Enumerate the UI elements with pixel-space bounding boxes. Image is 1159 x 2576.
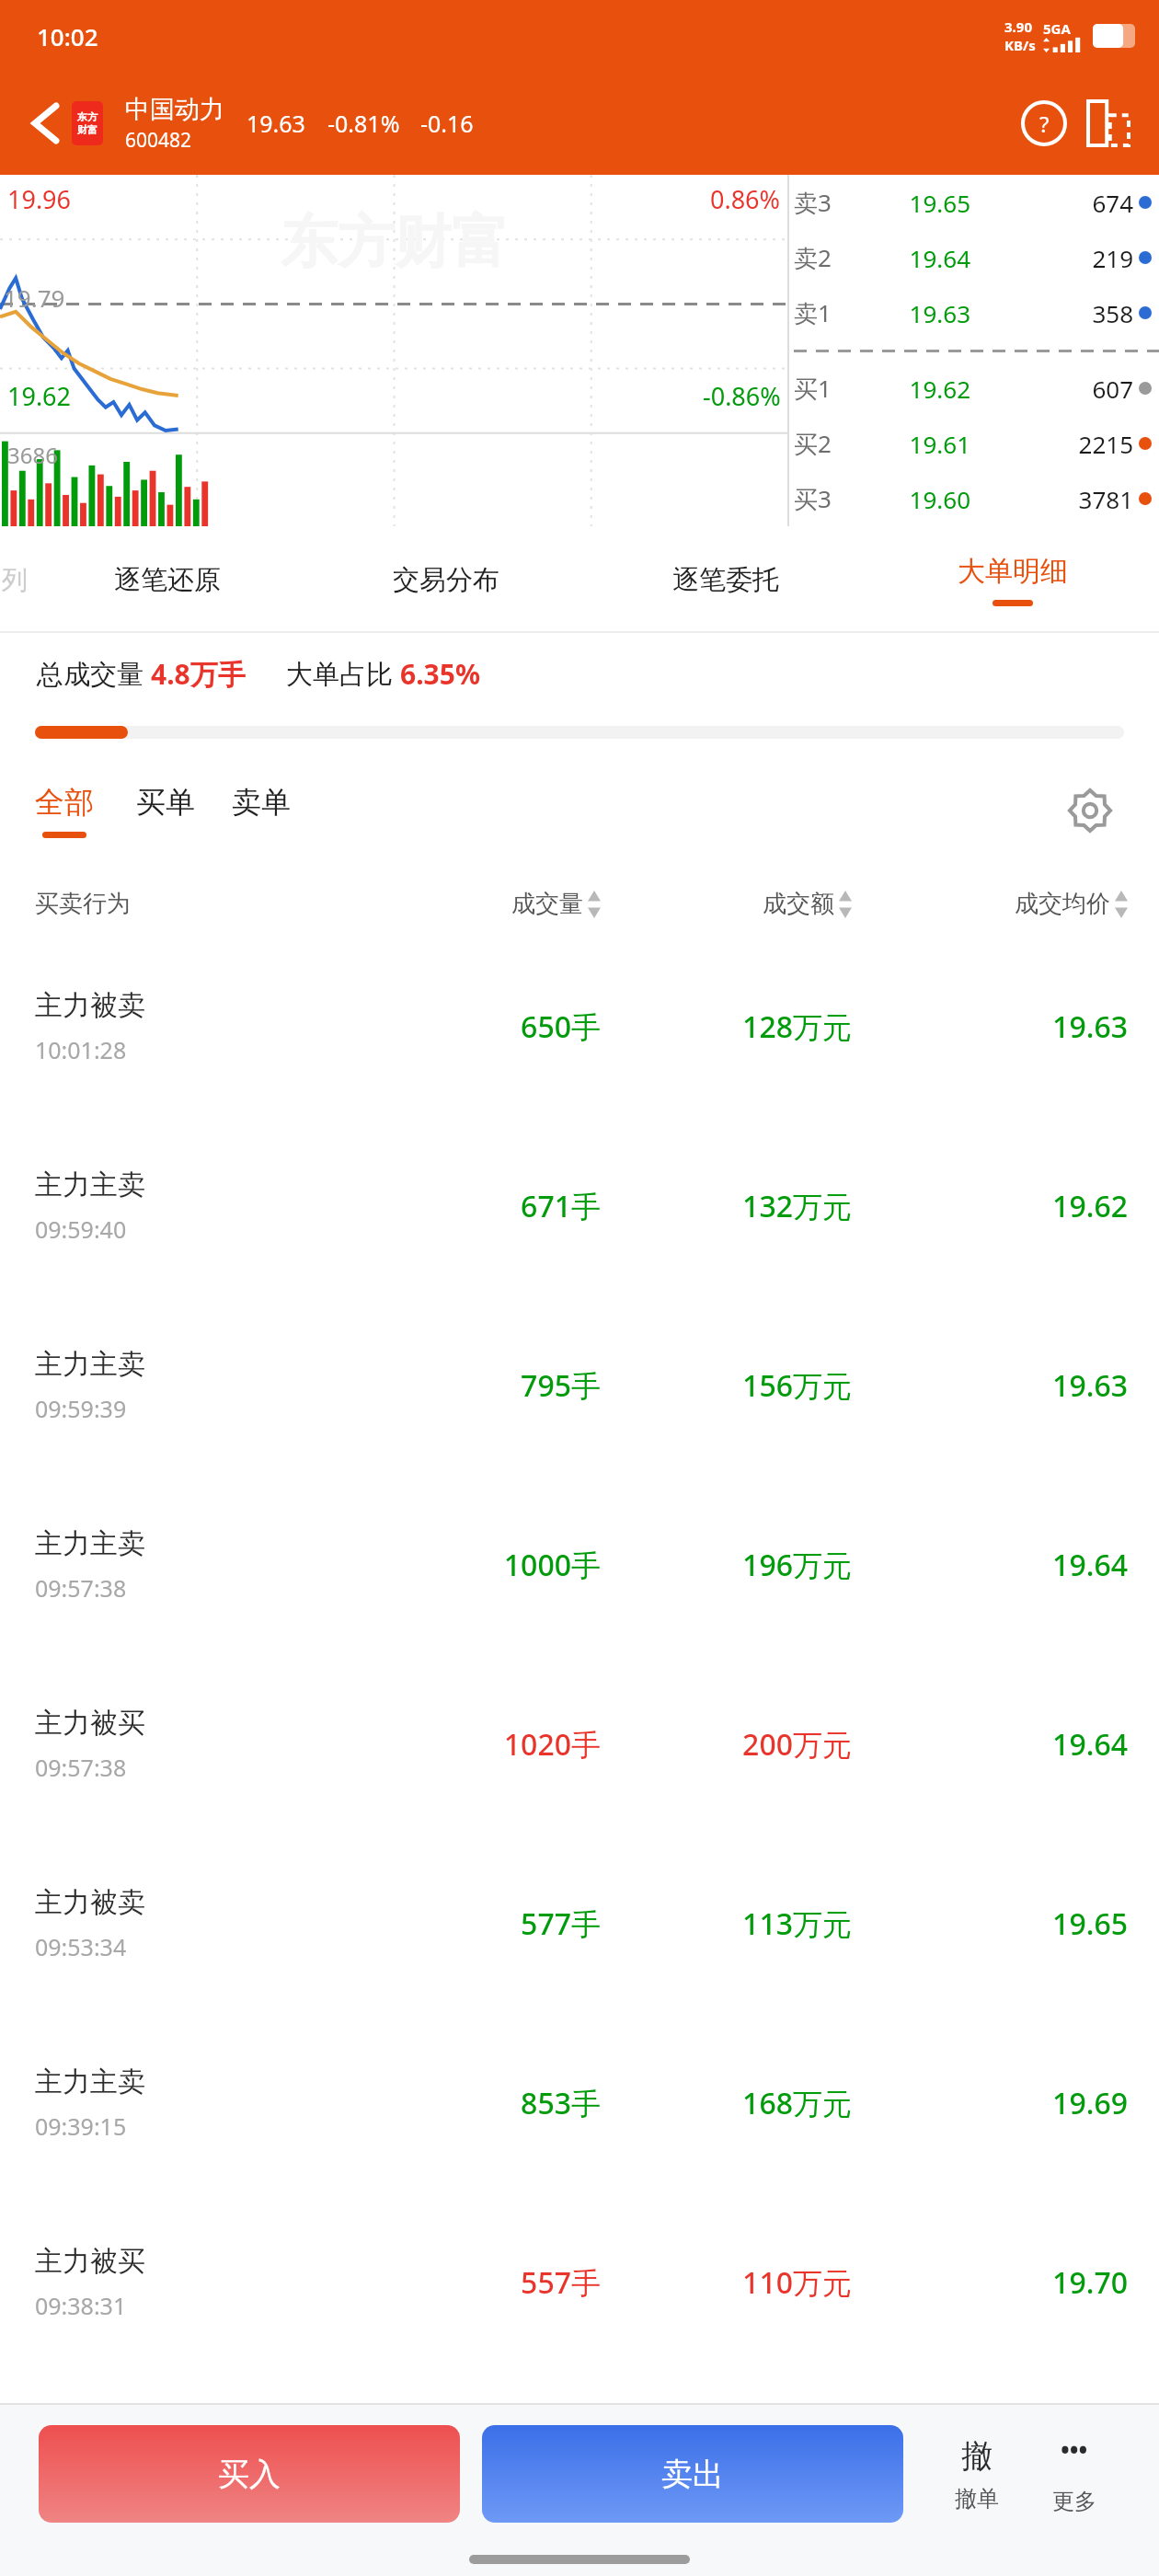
staticText: 主力主卖 [35,1347,145,1382]
staticText: 19.65 [852,1903,1128,1944]
button[interactable]: 成交量 [350,889,601,919]
button[interactable]: 全部 [35,784,94,838]
staticText: -0.16 [420,108,474,139]
button[interactable]: More [1028,2433,1120,2515]
button[interactable]: 逐笔还原 [28,526,306,633]
staticText: 358 [970,297,1133,329]
staticText: 买卖行为 [35,889,350,919]
staticText: 09:59:40 [35,1213,127,1245]
staticText: 671手 [350,1186,601,1226]
staticText: 总成交量 [37,655,151,692]
staticText: 1020手 [350,1724,601,1765]
staticText: 156万元 [601,1365,852,1406]
staticText: 主力被买 [35,2244,145,2279]
button[interactable]: 交易分布 [306,526,586,633]
button[interactable]: Settings [1058,778,1122,843]
staticText: 19.61 [867,428,970,460]
staticText: 09:53:34 [35,1931,127,1962]
staticText: 557手 [350,2262,601,2303]
staticText: 3.90 [1004,17,1032,36]
staticText: 128万元 [601,1006,852,1047]
button[interactable]: 买1 [794,361,1159,416]
staticText: 19.96 [7,182,72,216]
staticText: 674 [970,187,1133,219]
staticText: 0.86% [710,182,781,216]
staticText: 卖2 [794,241,867,274]
button[interactable]: 主力主卖 [35,1116,1128,1295]
button[interactable]: 卖出 [482,2425,903,2523]
button[interactable]: 主力被买 [35,1654,1128,1834]
staticText: 19.63 [867,297,970,329]
staticText: 19.64 [867,242,970,274]
button[interactable]: 撤 [931,2436,1023,2513]
button[interactable]: 卖1 [794,285,1159,340]
staticText: 3686 [7,440,58,470]
staticText: 买1 [794,372,867,405]
staticText: 09:59:39 [35,1393,127,1424]
staticText: 逐笔还原 [114,563,221,597]
staticText: 19.65 [867,187,970,219]
button[interactable]: 买单 [136,784,195,821]
button[interactable]: 主力被买 [35,2192,1128,2372]
staticText: 财富 [77,123,98,136]
button[interactable]: 主力被卖 [35,937,1128,1116]
staticText: 成交均价 [1015,889,1110,919]
staticText: 卖单 [232,784,291,821]
staticText: 大单明细 [958,554,1068,589]
staticText: 10:02 [37,20,98,52]
staticText: 19.64 [852,1724,1128,1765]
staticText: 列 [2,564,28,596]
staticText: 主力被买 [35,1706,145,1741]
staticText: 168万元 [601,2083,852,2123]
staticText: 3781 [970,483,1133,515]
staticText: 132万元 [601,1186,852,1226]
button[interactable]: Fullscreen [1080,95,1137,152]
staticText: 19.64 [852,1545,1128,1585]
staticText: 全部 [35,784,94,821]
staticText: 09:57:38 [35,1572,127,1604]
staticText: 中国动力 [125,94,224,125]
button[interactable]: 买入 [39,2425,460,2523]
staticText: 19.63 [852,1006,1128,1047]
staticText: 大单占比 [286,655,400,692]
staticText: 110万元 [601,2262,852,2303]
staticText: 853手 [350,2083,601,2123]
button[interactable]: 卖单 [232,784,291,821]
staticText: 卖1 [794,296,867,329]
staticText: 6.35% [400,655,480,693]
button[interactable]: 成交均价 [852,889,1128,919]
staticText: 19.62 [867,373,970,405]
staticText: 买单 [136,784,195,821]
button[interactable]: 成交额 [601,889,852,919]
button[interactable]: 大单明细 [866,526,1159,633]
staticText: ? [1039,109,1050,139]
button[interactable]: 逐笔委托 [586,526,866,633]
button[interactable]: 主力被卖 [35,1834,1128,2013]
staticText: 113万元 [601,1903,852,1944]
staticText: 795手 [350,1365,601,1406]
staticText: KB/s [1004,36,1036,54]
staticText: 东方 [77,110,98,123]
staticText: 607 [970,373,1133,405]
staticText: 买2 [794,427,867,460]
staticText: 19.63 [247,108,305,139]
staticText: 成交量 [511,889,583,919]
staticText: 交易分布 [393,563,499,597]
staticText: 650手 [350,1006,601,1047]
button[interactable]: 主力主卖 [35,1475,1128,1654]
button[interactable]: 买3 [794,471,1159,526]
staticText: 4.8万手 [151,655,246,693]
staticText: 1000手 [350,1545,601,1585]
staticText: 2215 [970,428,1133,460]
button[interactable]: Back [18,98,70,149]
button[interactable]: 卖2 [794,230,1159,285]
button[interactable]: 卖3 [794,175,1159,230]
staticText: 19.63 [852,1365,1128,1406]
button[interactable]: 主力主卖 [35,2013,1128,2192]
staticText: 更多 [1052,2488,1096,2515]
staticText: 19.60 [867,483,970,515]
staticText: 19.70 [852,2262,1128,2303]
button[interactable]: 主力主卖 [35,1295,1128,1475]
button[interactable]: 买2 [794,416,1159,471]
button[interactable]: Help [1016,95,1073,152]
